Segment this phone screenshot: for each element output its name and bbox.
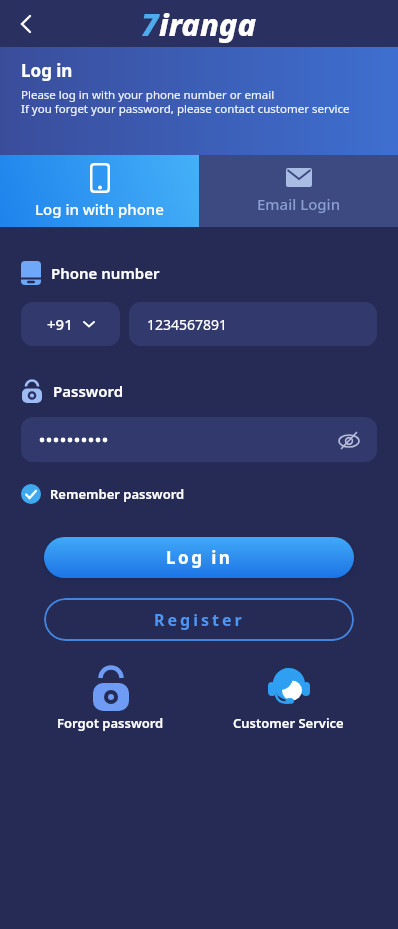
staticText: Remember password — [50, 485, 185, 503]
staticText: Password — [53, 381, 124, 401]
button[interactable]: Remember password — [21, 484, 185, 504]
button[interactable]: Log in with phone — [0, 155, 199, 227]
staticText: 1234567891 — [147, 315, 228, 334]
staticText: iranga — [159, 3, 257, 45]
button[interactable]: Email Login — [199, 155, 398, 227]
staticText: 7 — [141, 3, 159, 45]
button[interactable]: Register — [44, 598, 354, 641]
staticText: Customer Service — [233, 714, 344, 732]
button[interactable]: Log in — [44, 537, 354, 578]
staticText: Log in — [166, 546, 233, 569]
button[interactable] — [21, 417, 377, 462]
staticText: Forgot password — [57, 714, 164, 732]
staticText: Please log in with your phone number or … — [21, 87, 350, 116]
button[interactable] — [333, 424, 365, 456]
staticText: Phone number — [51, 263, 160, 283]
staticText: Log in with phone — [35, 199, 164, 219]
button[interactable]: +91 — [21, 302, 120, 346]
staticText: Email Login — [257, 194, 341, 214]
staticText: Log in — [21, 59, 73, 82]
staticText: +91 — [47, 314, 73, 334]
button[interactable]: 1234567891 — [129, 302, 377, 346]
staticText: Register — [154, 609, 245, 631]
button[interactable]: Forgot password — [57, 665, 164, 732]
button[interactable] — [10, 8, 42, 40]
button[interactable]: Customer Service — [233, 665, 344, 732]
